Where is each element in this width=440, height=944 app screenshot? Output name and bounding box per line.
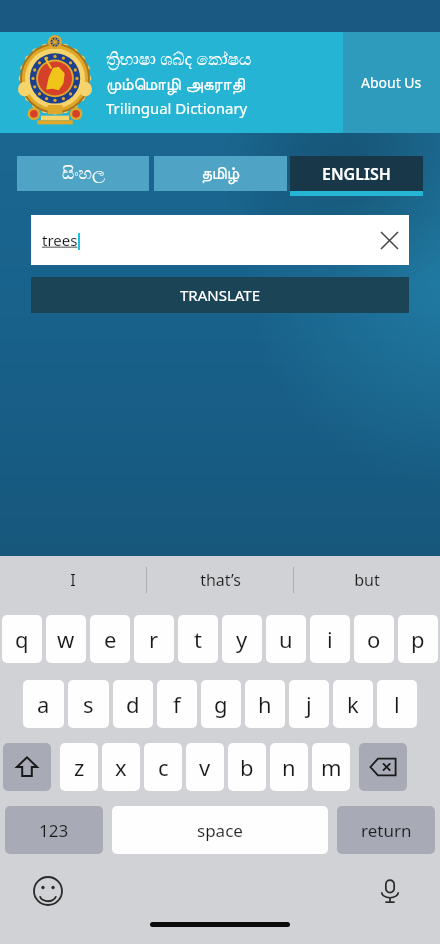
button[interactable]: Clear text — [369, 220, 409, 260]
staticText: return — [361, 819, 412, 842]
staticText: v — [199, 752, 211, 782]
staticText: i — [327, 624, 333, 654]
staticText: g — [214, 689, 228, 719]
button[interactable]: k — [333, 680, 373, 728]
staticText: z — [74, 752, 85, 782]
staticText: ත්‍රිභාෂා ශබ්ද කෝෂය — [106, 47, 252, 70]
button[interactable]: q — [2, 615, 42, 663]
staticText: r — [149, 624, 159, 654]
button[interactable]: b — [228, 743, 266, 791]
button[interactable]: z — [60, 743, 98, 791]
staticText: s — [83, 689, 94, 719]
staticText: b — [240, 752, 254, 782]
staticText: l — [394, 689, 400, 719]
button[interactable]: தமிழ் — [154, 156, 287, 196]
staticText: t — [194, 624, 202, 654]
button[interactable]: f — [157, 680, 197, 728]
button[interactable]: n — [270, 743, 308, 791]
button[interactable]: d — [113, 680, 153, 728]
staticText: u — [279, 624, 293, 654]
button[interactable]: space — [112, 806, 328, 854]
button[interactable]: I — [0, 556, 146, 603]
button[interactable]: u — [266, 615, 306, 663]
staticText: f — [173, 689, 181, 719]
staticText: k — [347, 689, 359, 719]
button[interactable]: v — [186, 743, 224, 791]
staticText: தமிழ் — [201, 165, 240, 182]
button[interactable]: but — [294, 556, 440, 603]
staticText: n — [282, 752, 296, 782]
staticText: y — [236, 624, 248, 654]
staticText: e — [104, 624, 117, 654]
button[interactable]: h — [245, 680, 285, 728]
button[interactable]: Voice input — [372, 873, 408, 909]
button[interactable]: e — [90, 615, 130, 663]
button[interactable]: Shift — [3, 743, 51, 791]
staticText: o — [367, 624, 381, 654]
button[interactable]: s — [68, 680, 109, 728]
staticText: மும்மொழி அகராதி — [106, 72, 245, 95]
button[interactable]: return — [337, 806, 435, 854]
button[interactable]: o — [354, 615, 394, 663]
staticText: h — [258, 689, 272, 719]
staticText: w — [57, 624, 75, 654]
staticText: m — [321, 752, 342, 782]
staticText: About Us — [361, 73, 422, 92]
staticText: j — [306, 689, 312, 719]
staticText: d — [126, 689, 140, 719]
staticText: c — [158, 752, 169, 782]
button[interactable]: p — [398, 615, 438, 663]
staticText: q — [15, 624, 29, 654]
button[interactable]: l — [377, 680, 417, 728]
button[interactable]: a — [23, 680, 64, 728]
button[interactable]: r — [134, 615, 174, 663]
staticText: but — [354, 569, 380, 591]
staticText: space — [197, 819, 243, 842]
button[interactable]: x — [102, 743, 140, 791]
button[interactable]: Backspace — [359, 743, 407, 791]
button[interactable]: t — [178, 615, 218, 663]
button[interactable]: i — [310, 615, 350, 663]
button[interactable]: w — [46, 615, 86, 663]
staticText: a — [37, 689, 50, 719]
button[interactable]: c — [144, 743, 182, 791]
button[interactable]: Emoji — [30, 873, 66, 909]
staticText: trees — [42, 230, 78, 250]
staticText: සිංහල — [62, 165, 105, 182]
staticText: p — [411, 624, 425, 654]
button[interactable]: m — [312, 743, 350, 791]
button[interactable]: j — [289, 680, 329, 728]
staticText: x — [115, 752, 127, 782]
button[interactable]: සිංහල — [17, 156, 149, 196]
button[interactable]: trees — [31, 215, 409, 265]
staticText: Trilingual Dictionary — [106, 98, 248, 118]
button[interactable]: 123 — [5, 806, 103, 854]
button[interactable]: that’s — [147, 556, 293, 603]
staticText: I — [70, 569, 76, 591]
button[interactable]: About Us — [343, 32, 440, 133]
button[interactable]: g — [201, 680, 241, 728]
staticText: 123 — [39, 819, 69, 842]
staticText: that’s — [200, 569, 241, 591]
staticText: ENGLISH — [322, 163, 391, 185]
staticText: TRANSLATE — [180, 285, 260, 305]
button[interactable]: ENGLISH — [290, 156, 423, 196]
button[interactable]: TRANSLATE — [31, 277, 409, 313]
button[interactable]: y — [222, 615, 262, 663]
